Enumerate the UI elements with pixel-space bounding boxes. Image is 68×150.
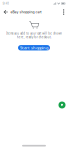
button[interactable]: Start shopping bbox=[18, 45, 50, 50]
button[interactable]: More options bbox=[60, 7, 67, 17]
staticText: Items you add to your cart will be shown… bbox=[6, 32, 62, 39]
staticText: Start shopping bbox=[20, 45, 48, 50]
staticText: 9:41 bbox=[2, 1, 8, 6]
button[interactable]: Chat bbox=[58, 101, 65, 108]
staticText: eBay shopping cart bbox=[10, 10, 41, 14]
button[interactable]: Back bbox=[1, 7, 10, 17]
